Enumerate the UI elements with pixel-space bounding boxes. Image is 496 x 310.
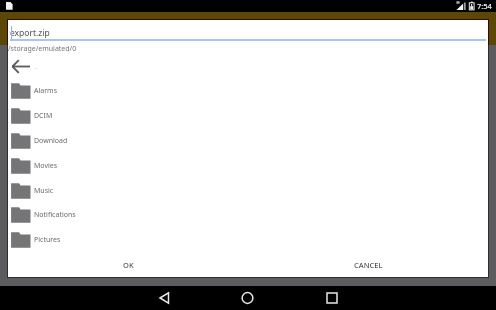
staticText: OK bbox=[123, 260, 134, 270]
button[interactable]: Alarms bbox=[8, 79, 488, 103]
button[interactable]: CANCEL bbox=[248, 252, 488, 277]
button[interactable]: Music bbox=[8, 179, 488, 203]
button[interactable]: OK bbox=[8, 252, 248, 277]
staticText: /storage/emulated/0 bbox=[8, 44, 77, 54]
button[interactable]: Download bbox=[8, 129, 488, 153]
staticText: Pictures bbox=[34, 235, 61, 245]
button[interactable]: Up one level bbox=[8, 55, 488, 78]
button[interactable]: Movies bbox=[8, 154, 488, 178]
staticText: Alarms bbox=[34, 86, 57, 96]
button[interactable]: Notifications bbox=[8, 203, 488, 227]
staticText: .. bbox=[34, 62, 38, 72]
staticText: CANCEL bbox=[354, 260, 383, 270]
staticText: Notifications bbox=[34, 210, 76, 220]
staticText: Download bbox=[34, 136, 68, 146]
button[interactable]: Pictures bbox=[8, 228, 488, 252]
staticText: Music bbox=[34, 186, 54, 196]
staticText: Movies bbox=[34, 161, 58, 171]
staticText: export.zip bbox=[10, 27, 50, 39]
button[interactable]: DCIM bbox=[8, 104, 488, 128]
staticText: 7:54 bbox=[477, 1, 492, 11]
staticText: DCIM bbox=[34, 111, 53, 121]
